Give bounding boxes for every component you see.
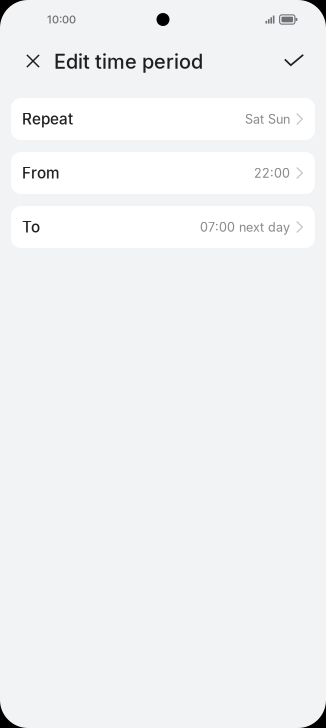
staticText: To [22, 218, 40, 236]
staticText: From [22, 164, 60, 182]
button[interactable]: Close [13, 39, 53, 81]
button[interactable]: Save [274, 39, 314, 81]
staticText: Repeat [22, 110, 73, 128]
button[interactable]: Repeat [11, 98, 315, 140]
staticText: Edit time period [54, 49, 203, 73]
button[interactable]: From [11, 152, 315, 194]
staticText: 22:00 [254, 166, 290, 181]
button[interactable]: To [11, 206, 315, 248]
staticText: 10:00 [47, 13, 76, 26]
staticText: 07:00 next day [200, 220, 290, 235]
staticText: Sat Sun [245, 112, 290, 127]
